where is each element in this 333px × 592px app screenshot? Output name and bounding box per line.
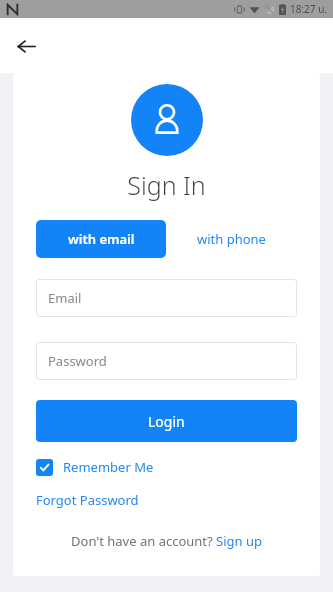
- button[interactable]: Don't have an account? Sign up: [13, 532, 320, 550]
- staticText: Remember Me: [63, 458, 154, 476]
- staticText: Email: [48, 289, 82, 307]
- staticText: Sign In: [127, 168, 206, 202]
- button[interactable]: Back: [10, 30, 42, 62]
- button[interactable]: with phone: [166, 220, 297, 258]
- staticText: Password: [48, 352, 107, 370]
- button[interactable]: Email: [36, 279, 297, 317]
- button[interactable]: Remember Me: [36, 458, 154, 476]
- staticText: with phone: [197, 230, 266, 248]
- staticText: Login: [148, 412, 185, 431]
- button[interactable]: Login: [36, 400, 297, 442]
- staticText: 18:27 u.: [290, 2, 328, 16]
- button[interactable]: with email: [36, 220, 166, 258]
- staticText: Don't have an account? Sign up: [71, 532, 262, 550]
- button[interactable]: Password: [36, 342, 297, 380]
- button[interactable]: Forgot Password: [36, 491, 139, 509]
- staticText: with email: [68, 230, 135, 248]
- staticText: Forgot Password: [36, 491, 139, 509]
